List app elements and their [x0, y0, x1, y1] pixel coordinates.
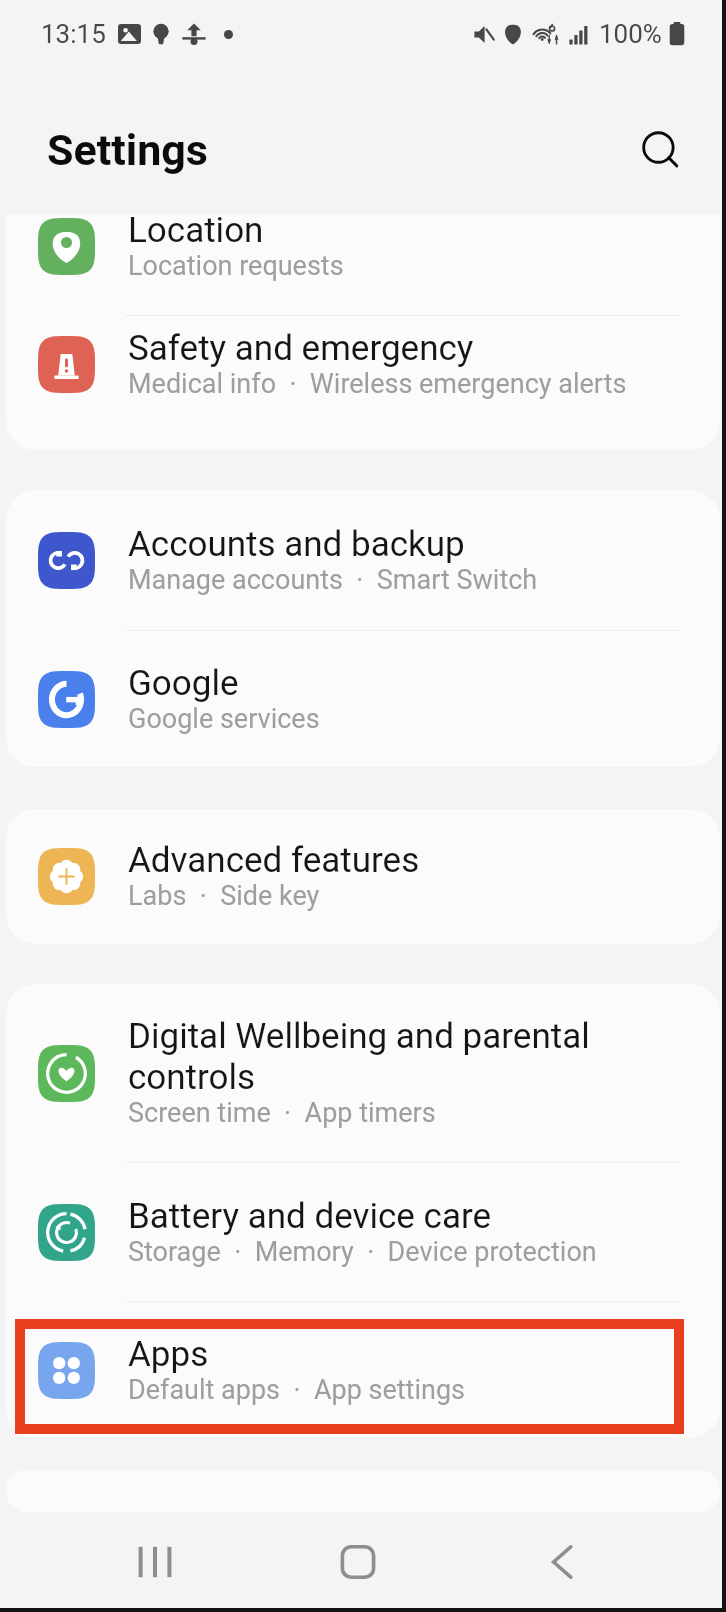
- staticText: Screen time · App timers: [128, 1097, 436, 1129]
- staticText: Advanced features: [128, 840, 420, 881]
- staticText: Safety and emergency: [128, 328, 474, 369]
- staticText: 13:15: [41, 19, 106, 49]
- button[interactable]: Accounts and backup: [6, 490, 720, 630]
- button[interactable]: Back: [522, 1527, 602, 1597]
- staticText: 100%: [599, 19, 662, 49]
- staticText: Apps: [128, 1334, 209, 1375]
- staticText: Accounts and backup: [128, 524, 465, 565]
- staticText: Google services: [128, 703, 320, 735]
- button[interactable]: Battery and device care: [6, 1163, 720, 1301]
- staticText: Google: [128, 663, 239, 704]
- staticText: Storage · Memory · Device protection: [128, 1236, 597, 1268]
- staticText: Manage accounts · Smart Switch: [128, 564, 538, 596]
- button[interactable]: Digital Wellbeing and parental: [6, 984, 720, 1162]
- staticText: Digital Wellbeing and parental: [128, 1016, 590, 1057]
- staticText: Settings: [47, 125, 208, 175]
- staticText: Medical info · Wireless emergency alerts: [128, 368, 627, 400]
- staticText: Location requests: [128, 250, 344, 282]
- button[interactable]: Apps: [6, 1302, 720, 1438]
- staticText: Default apps · App settings: [128, 1374, 465, 1406]
- button[interactable]: Recents: [115, 1527, 195, 1597]
- button[interactable]: Advanced features: [6, 809, 720, 944]
- button[interactable]: Google: [6, 631, 720, 767]
- button[interactable]: Home: [318, 1527, 398, 1597]
- button[interactable]: Search: [628, 118, 698, 188]
- button[interactable]: Location: [6, 214, 720, 315]
- staticText: Labs · Side key: [128, 880, 320, 912]
- staticText: Battery and device care: [128, 1196, 492, 1237]
- staticText: controls: [128, 1057, 256, 1098]
- staticText: Location: [128, 214, 264, 251]
- button[interactable]: Safety and emergency: [6, 316, 720, 413]
